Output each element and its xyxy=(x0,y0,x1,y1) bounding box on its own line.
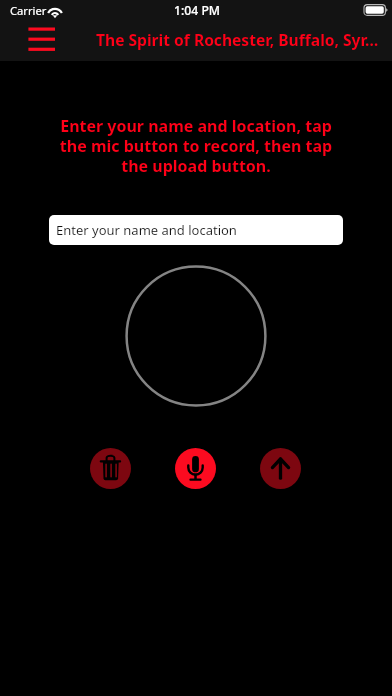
staticText: 1:04 PM xyxy=(174,2,221,19)
staticText: Carrier xyxy=(10,3,47,18)
staticText: Enter your name and location xyxy=(56,221,237,239)
button[interactable]: Upload xyxy=(260,448,301,489)
button[interactable]: Record xyxy=(175,448,216,489)
staticText: Enter your name and location, tap the mi… xyxy=(50,115,342,177)
button[interactable]: Delete xyxy=(90,448,131,489)
staticText: The Spirit of Rochester, Buffalo, Syr… xyxy=(96,29,379,50)
button[interactable]: Menu xyxy=(16,20,68,58)
button[interactable]: Enter your name and location xyxy=(49,215,343,245)
